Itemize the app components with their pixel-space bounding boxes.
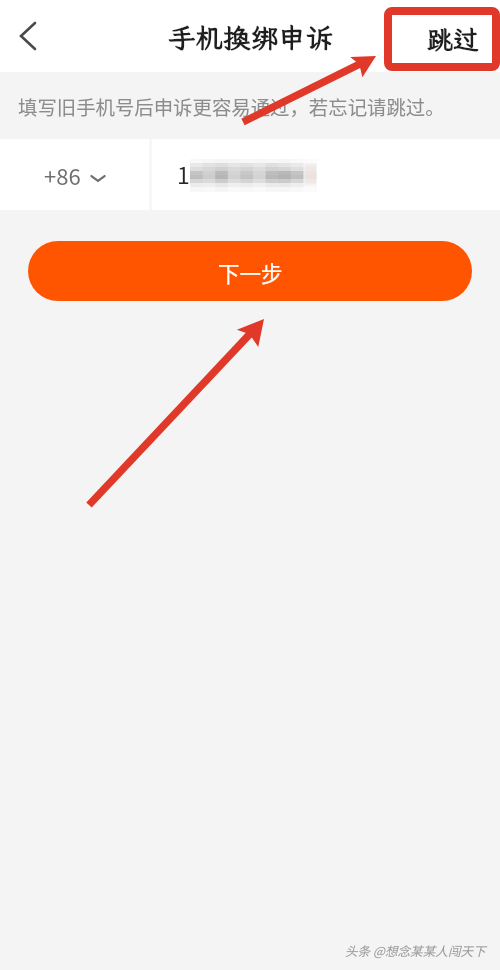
staticText: 跳过 [427,22,480,56]
button[interactable]: 1 [152,139,500,210]
button[interactable]: Back [5,13,51,59]
button[interactable]: 跳过 [427,22,480,56]
staticText: 手机换绑申诉 [168,20,333,56]
staticText: +86 [44,159,81,191]
staticText: 下一步 [218,257,283,288]
staticText: 1 [177,157,190,190]
button[interactable]: 下一步 [28,241,472,301]
button[interactable]: +86 [0,139,149,210]
staticText: 头条 @想念某某人闯天下 [345,941,486,959]
staticText: 填写旧手机号后申诉更容易通过，若忘记请跳过。 [18,92,445,120]
